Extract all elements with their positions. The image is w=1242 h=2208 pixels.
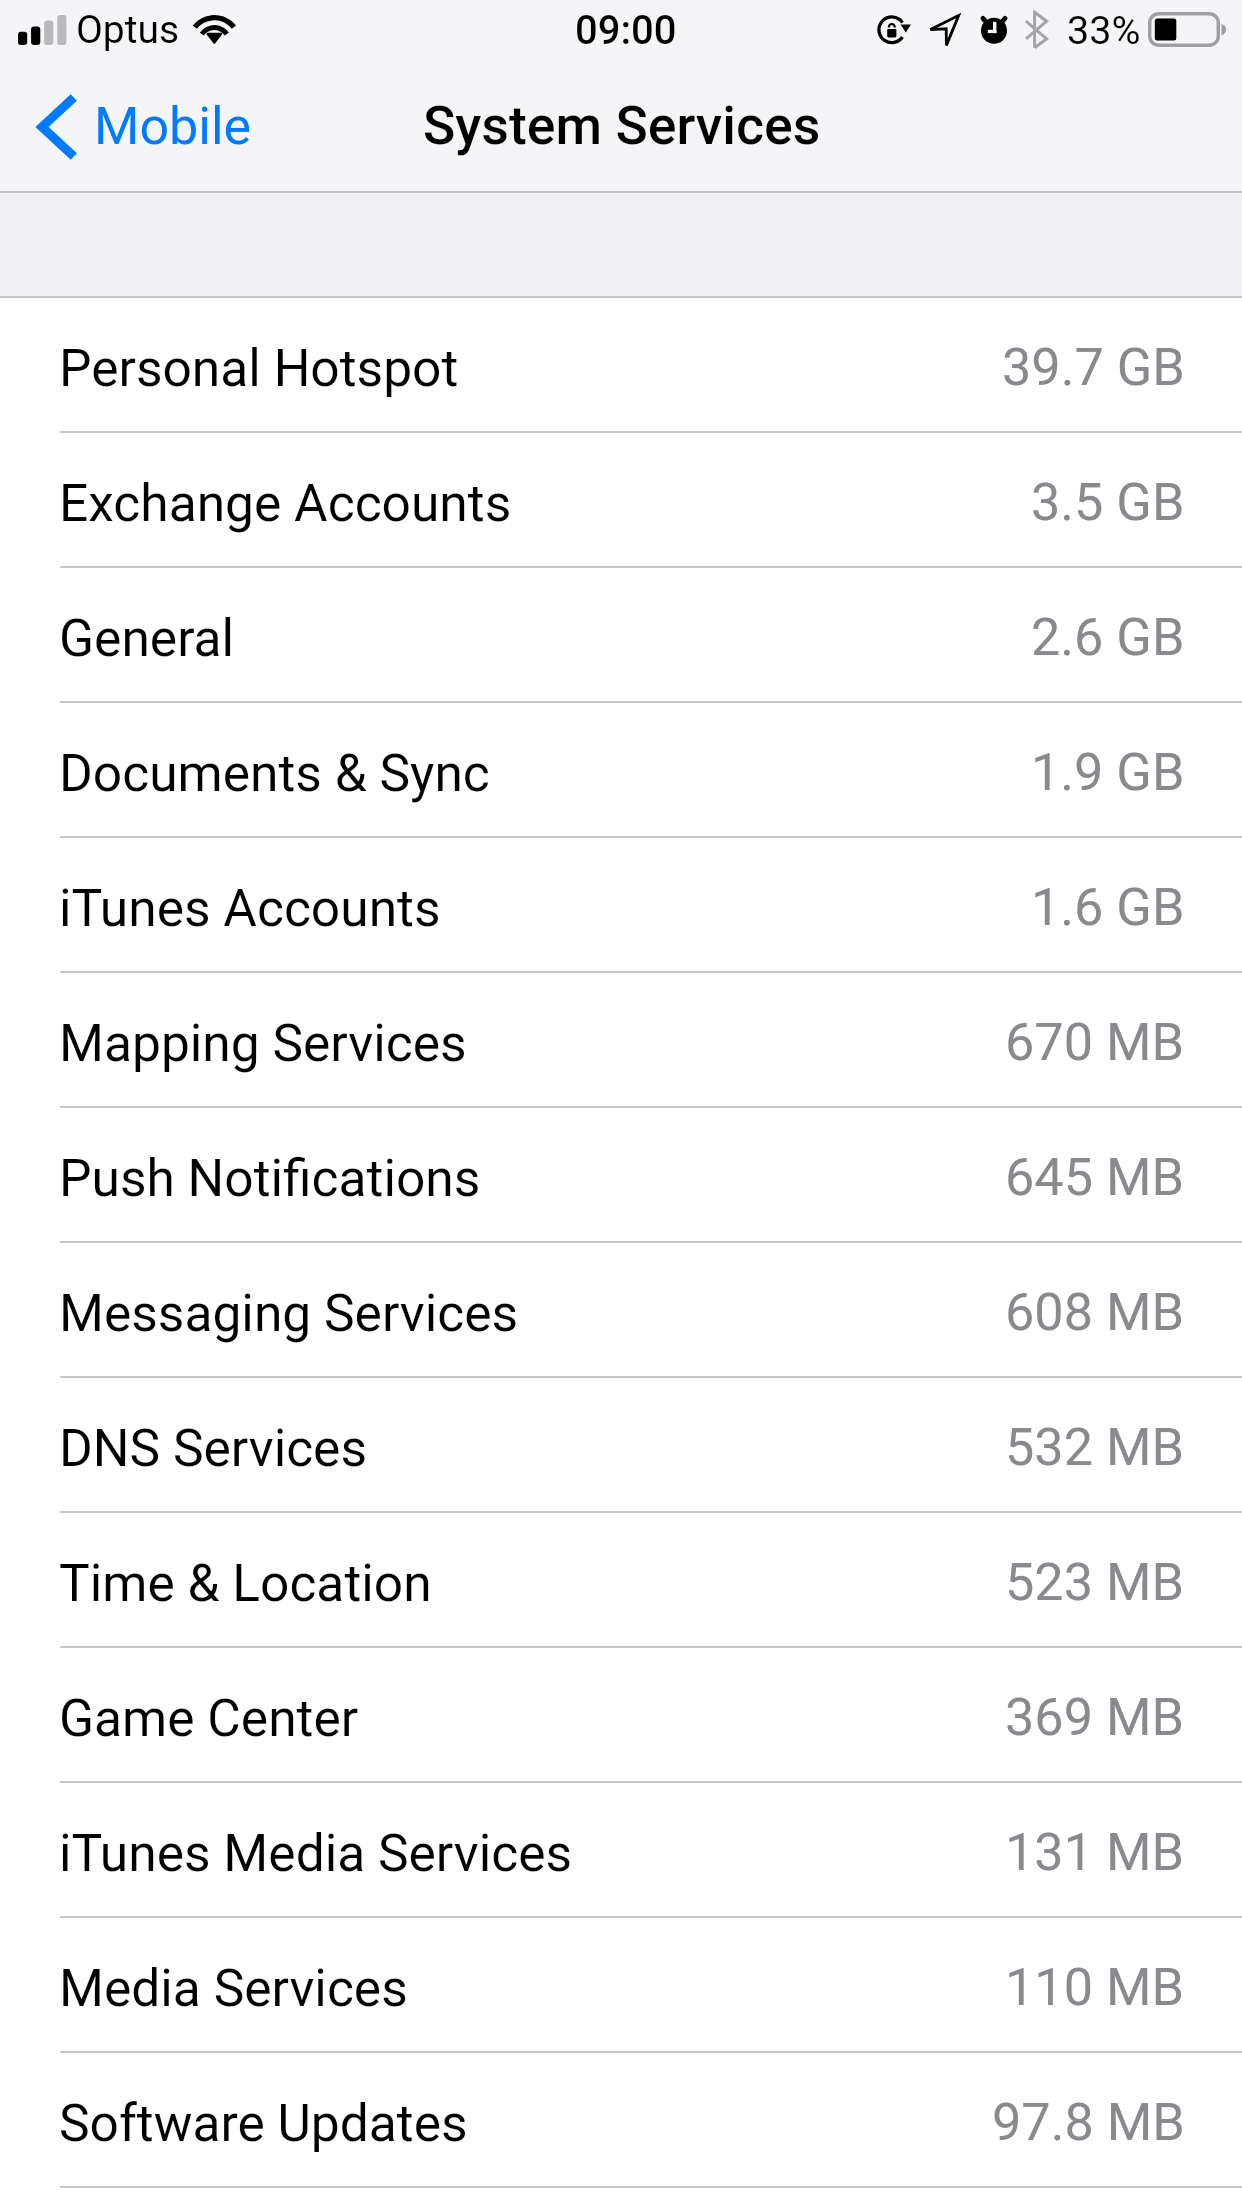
staticText: Documents & Sync	[59, 743, 490, 803]
staticText: 110 MB	[1005, 1957, 1185, 2018]
button[interactable]: iTunes Media Services	[0, 1783, 1242, 1918]
button[interactable]: Documents & Sync	[0, 703, 1242, 838]
button[interactable]: Mapping Services	[0, 973, 1242, 1108]
staticText: Media Services	[59, 1958, 408, 2018]
staticText: Optus	[76, 7, 180, 53]
staticText: System Services	[423, 94, 821, 157]
staticText: 1.6 GB	[1031, 877, 1185, 938]
staticText: Messaging Services	[59, 1283, 519, 1343]
button[interactable]: Software Updates	[0, 2053, 1242, 2188]
staticText: 645 MB	[1005, 1147, 1185, 1208]
staticText: Software Updates	[59, 2093, 468, 2153]
staticText: 2.6 GB	[1031, 607, 1185, 668]
staticText: Mobile	[94, 96, 252, 157]
staticText: Time & Location	[59, 1553, 432, 1613]
staticText: 532 MB	[1005, 1417, 1185, 1478]
staticText: iTunes Accounts	[59, 878, 441, 938]
staticText: 3.5 GB	[1031, 472, 1185, 533]
staticText: 33%	[1067, 7, 1141, 53]
other: Back to Mobile	[37, 96, 75, 158]
button[interactable]: DNS Services	[0, 1378, 1242, 1513]
staticText: Personal Hotspot	[59, 338, 459, 398]
staticText: 131 MB	[1005, 1822, 1185, 1883]
staticText: 39.7 GB	[1002, 337, 1185, 398]
staticText: 369 MB	[1005, 1687, 1185, 1748]
staticText: 09:00	[575, 7, 677, 54]
button[interactable]: Push Notifications	[0, 1108, 1242, 1243]
staticText: 1.9 GB	[1031, 742, 1185, 803]
staticText: General	[59, 608, 235, 668]
staticText: Push Notifications	[59, 1148, 481, 1208]
staticText: 523 MB	[1005, 1552, 1185, 1613]
staticText: Exchange Accounts	[59, 473, 512, 533]
button[interactable]: Exchange Accounts	[0, 433, 1242, 568]
staticText: 608 MB	[1005, 1282, 1185, 1343]
staticText: 97.8 MB	[992, 2092, 1185, 2153]
staticText: 670 MB	[1005, 1012, 1185, 1073]
button[interactable]: Messaging Services	[0, 1243, 1242, 1378]
staticText: Mapping Services	[59, 1013, 467, 1073]
button[interactable]: Game Center	[0, 1648, 1242, 1783]
button[interactable]: Back to Mobile	[0, 80, 274, 174]
staticText: DNS Services	[59, 1418, 367, 1478]
button[interactable]: Media Services	[0, 1918, 1242, 2053]
button[interactable]: iTunes Accounts	[0, 838, 1242, 973]
button[interactable]: General	[0, 568, 1242, 703]
button[interactable]: Personal Hotspot	[0, 298, 1242, 433]
staticText: iTunes Media Services	[59, 1823, 573, 1883]
button[interactable]: Time & Location	[0, 1513, 1242, 1648]
staticText: Game Center	[59, 1688, 359, 1748]
